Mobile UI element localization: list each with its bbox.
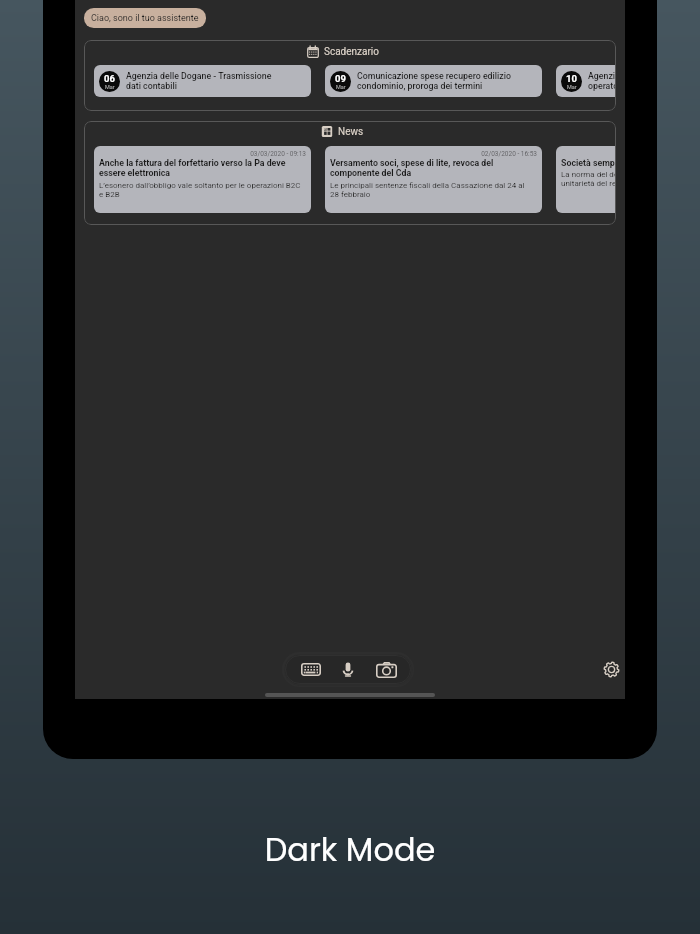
staticText: La norma del decreto richiede l’assoluta… xyxy=(561,170,616,188)
button[interactable]: 02/03/2020 - 16:53 xyxy=(325,146,542,213)
staticText: 02/03/2020 - 16:53 xyxy=(325,150,537,158)
staticText: Anche la fattura del forfettario verso l… xyxy=(99,158,286,178)
staticText: News xyxy=(338,126,364,138)
button[interactable]: Camera xyxy=(366,655,406,684)
button[interactable]: 09 xyxy=(325,65,542,97)
staticText: Società sempre più trasparente xyxy=(561,158,616,168)
staticText: Agenzia delle Dogane - Trasmissione dati… xyxy=(126,71,272,91)
button[interactable]: Settings xyxy=(600,658,622,680)
staticText: Dark Mode xyxy=(0,827,700,872)
staticText: 10 xyxy=(566,73,577,84)
button[interactable]: Ciao, sono il tuo assistente xyxy=(84,8,206,28)
staticText: 02/03/2020 - 12:01 xyxy=(556,150,616,158)
button[interactable]: 10 xyxy=(556,65,616,97)
staticText: Ciao, sono il tuo assistente xyxy=(91,13,199,24)
staticText: 06 xyxy=(104,73,115,84)
staticText: L’esonero dall’obbligo vale soltanto per… xyxy=(99,181,301,199)
button[interactable]: 02/03/2020 - 12:01 xyxy=(556,146,616,213)
button[interactable]: Keyboard xyxy=(291,655,331,684)
staticText: Agenzia delle Entrate - operatori finanz… xyxy=(588,71,616,91)
staticText: Versamento soci, spese di lite, revoca d… xyxy=(330,158,494,178)
staticText: Scadenzario xyxy=(324,46,379,58)
button[interactable]: 06 xyxy=(94,65,311,97)
staticText: 03/03/2020 - 09:13 xyxy=(94,150,306,158)
staticText: Mar xyxy=(105,84,115,90)
staticText: Mar xyxy=(336,84,346,90)
button[interactable]: Voice input xyxy=(328,655,368,684)
staticText: Mar xyxy=(567,84,577,90)
staticText: 09 xyxy=(335,73,346,84)
staticText: Le principali sentenze fiscali della Cas… xyxy=(330,181,525,199)
staticText: Comunicazione spese recupero edilizio co… xyxy=(357,71,511,91)
button[interactable]: 03/03/2020 - 09:13 xyxy=(94,146,311,213)
